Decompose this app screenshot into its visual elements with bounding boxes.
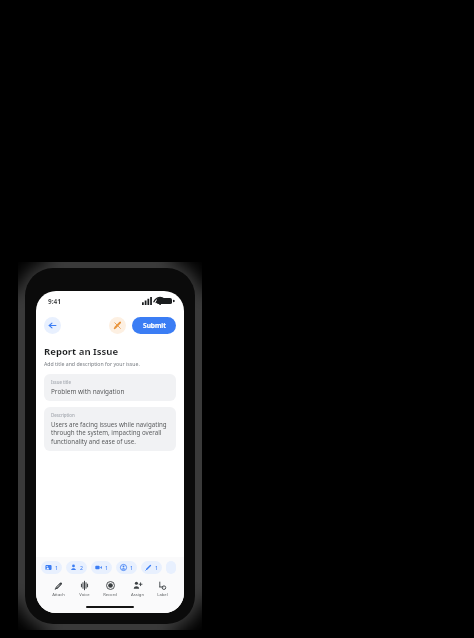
staticText: Attach	[52, 592, 65, 598]
staticText: Label	[157, 592, 168, 598]
button[interactable]: Issue title	[44, 374, 176, 401]
button[interactable]: Record	[101, 580, 119, 599]
staticText: 1	[105, 564, 108, 571]
staticText: Problem with navigation	[51, 387, 125, 396]
staticText: Issue title	[51, 379, 71, 385]
staticText: Voice	[79, 592, 90, 598]
staticText: 1	[130, 564, 133, 571]
staticText: Record	[103, 592, 117, 598]
button[interactable]: 1	[91, 561, 112, 574]
button[interactable]: Back	[44, 317, 61, 334]
staticText: 1	[155, 564, 158, 571]
button[interactable]: 1	[141, 561, 162, 574]
button[interactable]: Label	[155, 580, 170, 599]
button[interactable]: Attach	[50, 580, 67, 599]
button[interactable]: Voice	[77, 580, 92, 599]
staticText: 9:41	[48, 297, 61, 306]
staticText: 1	[55, 564, 58, 571]
staticText: Add title and description for your issue…	[44, 360, 140, 367]
staticText: 2	[80, 564, 83, 571]
button[interactable]: 1	[116, 561, 137, 574]
staticText: Submit	[143, 321, 166, 330]
button[interactable]: Description	[44, 407, 176, 451]
button[interactable]: 1	[41, 561, 62, 574]
staticText: Assign	[131, 592, 144, 598]
staticText: Report an Issue	[44, 345, 119, 358]
button[interactable]: 2	[66, 561, 87, 574]
button[interactable]: Edit	[109, 317, 126, 334]
button[interactable]: Submit	[132, 317, 176, 334]
staticText: Users are facing issues while navigating…	[51, 420, 169, 446]
button[interactable]: Assign	[129, 580, 146, 599]
staticText: Description	[51, 412, 75, 418]
button[interactable]	[166, 561, 176, 574]
